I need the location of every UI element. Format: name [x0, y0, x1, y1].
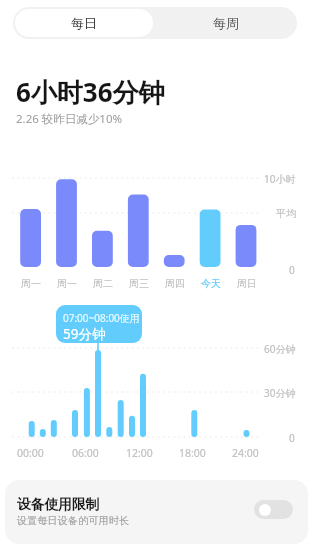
button[interactable]: 周日 [231, 277, 263, 290]
staticText: 周一 [57, 277, 77, 290]
button[interactable]: Toggle device usage limit [254, 500, 293, 519]
staticText: 平均 [276, 207, 296, 220]
button[interactable]: 07:00~08:00使用 [56, 305, 142, 343]
staticText: 00:00 [17, 446, 44, 460]
button[interactable]: 周二 [87, 277, 119, 290]
button[interactable]: 周一 [15, 277, 47, 290]
staticText: 12:00 [126, 446, 153, 460]
staticText: 2.26 较昨日减少10% [16, 111, 123, 127]
button[interactable]: 设备使用限制 [5, 480, 308, 544]
staticText: 每日 [71, 15, 97, 31]
button[interactable]: 每日 [15, 9, 153, 37]
staticText: 周一 [21, 277, 41, 290]
button[interactable]: 今天 [195, 277, 227, 290]
staticText: 59分钟 [63, 325, 106, 343]
staticText: 10小时 [264, 172, 296, 186]
staticText: 30分钟 [264, 386, 296, 400]
staticText: 6小时36分钟 [16, 74, 165, 110]
staticText: 今天 [201, 277, 221, 290]
staticText: 60分钟 [264, 342, 296, 356]
staticText: 设备使用限制 [17, 496, 100, 513]
staticText: 18:00 [179, 446, 206, 460]
staticText: 每周 [213, 15, 239, 31]
staticText: 0 [289, 431, 295, 445]
button[interactable]: 周三 [123, 277, 155, 290]
staticText: 06:00 [72, 446, 99, 460]
staticText: 设置每日设备的可用时长 [17, 514, 130, 527]
staticText: 24:00 [232, 446, 259, 460]
staticText: 07:00~08:00使用 [63, 311, 140, 325]
staticText: 周四 [165, 277, 185, 290]
staticText: 周二 [93, 277, 113, 290]
button[interactable]: 周一 [51, 277, 83, 290]
staticText: 周三 [129, 277, 149, 290]
button[interactable]: 每周 [155, 7, 297, 39]
staticText: 0 [289, 263, 295, 277]
button[interactable]: 周四 [159, 277, 191, 290]
staticText: 周日 [237, 277, 257, 290]
